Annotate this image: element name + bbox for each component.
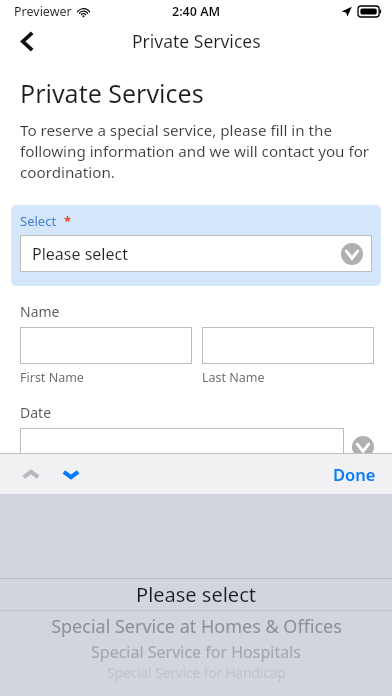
staticText: First Name [20,369,84,386]
staticText: Done [333,463,376,485]
staticText: Private Services [132,29,261,53]
button[interactable] [20,428,344,465]
staticText: Special Service for Handicap [107,664,286,682]
button[interactable] [202,327,374,364]
button[interactable]: Next field [54,457,88,491]
staticText: Please select [32,243,128,265]
staticText: 2:40 AM [172,3,221,20]
staticText: * [64,212,72,230]
staticText: Date [20,403,52,422]
button[interactable]: Done [323,455,386,493]
button[interactable] [20,327,192,364]
staticText: To reserve a special service, please fil… [20,120,376,183]
staticText: Special Service at Homes & Offices [51,614,342,639]
button[interactable]: Please select [0,494,392,696]
button[interactable]: Back [0,22,54,60]
staticText: Please select [136,581,256,608]
button[interactable]: Previous field [14,457,48,491]
button[interactable]: Please select [20,235,372,272]
button[interactable]: Pick date [352,436,374,458]
staticText: Name [20,302,60,321]
staticText: Special Service for Hospitals [91,641,301,663]
staticText: Private Services [20,76,204,110]
staticText: Select [20,212,57,230]
staticText: Previewer [14,3,72,20]
staticText: Last Name [202,369,265,386]
